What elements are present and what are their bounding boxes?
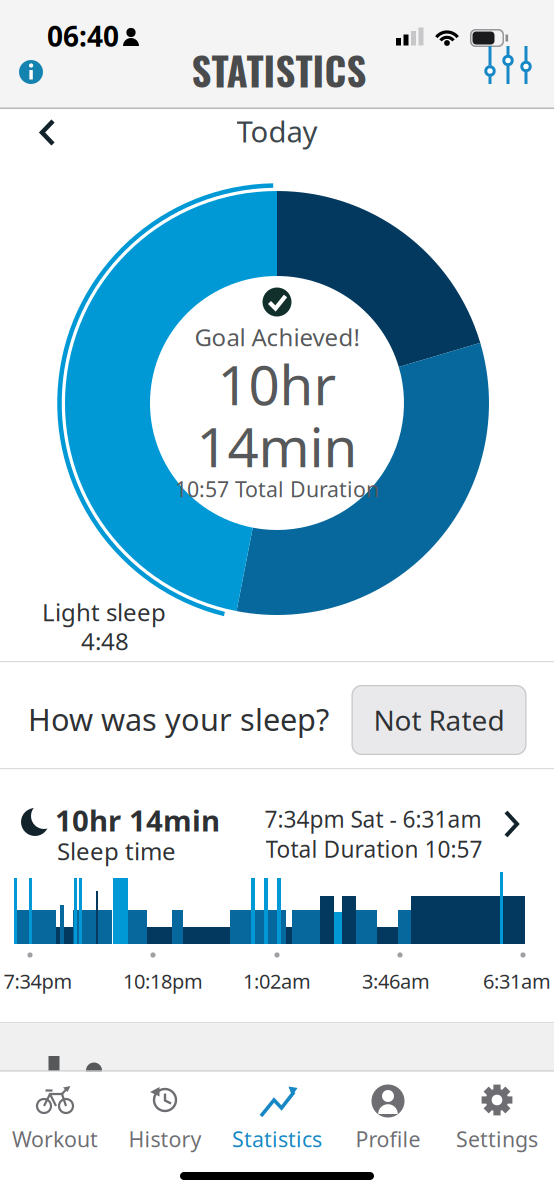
staticText: 3:46am [362, 968, 430, 994]
staticText: Total Duration 10:57 [265, 834, 482, 864]
staticText: Not Rated [373, 701, 504, 739]
staticText: 10:18pm [123, 968, 203, 994]
staticText: Settings [456, 1125, 538, 1153]
staticText: Workout [12, 1125, 98, 1153]
staticText: Goal Achieved! [194, 321, 359, 353]
staticText: Sleep time [57, 835, 176, 867]
staticText: 6:31am [483, 968, 551, 994]
staticText: 10:57 Total Duration [175, 475, 379, 503]
staticText: Today [236, 111, 317, 150]
staticText: 1:02am [243, 968, 311, 994]
staticText: History [128, 1125, 201, 1153]
staticText: 10hr 14min [55, 800, 220, 839]
staticText: STATISTICS [191, 41, 366, 99]
staticText: 4:48 [81, 625, 129, 657]
staticText: 7:34pm [3, 968, 72, 994]
staticText: Profile [355, 1125, 420, 1153]
staticText: How was your sleep? [28, 699, 329, 739]
staticText: 14min [196, 410, 357, 482]
staticText: 10hr [217, 348, 336, 420]
staticText: Light sleep [42, 596, 166, 628]
staticText: Statistics [232, 1125, 322, 1153]
staticText: 06:40 [47, 17, 119, 55]
staticText: 7:34pm Sat - 6:31am [264, 804, 481, 834]
